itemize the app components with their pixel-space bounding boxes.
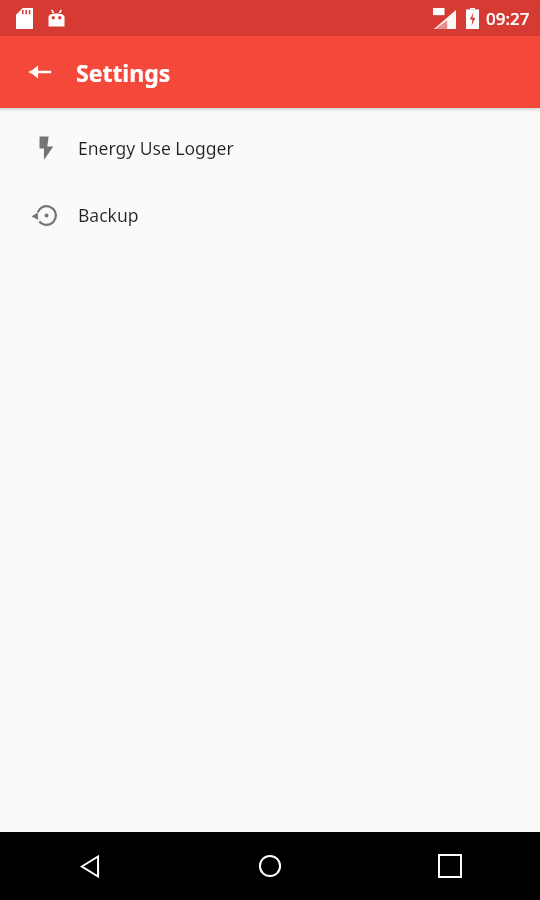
button[interactable]: Home <box>180 832 360 900</box>
staticText: Backup <box>78 203 139 227</box>
button[interactable]: Backup <box>0 181 540 248</box>
button[interactable]: Back <box>12 44 68 100</box>
button[interactable]: Back <box>0 832 180 900</box>
staticText: Energy Use Logger <box>78 136 234 160</box>
staticText: 09:27 <box>486 7 530 30</box>
staticText: Settings <box>76 57 171 88</box>
button[interactable]: Recent apps <box>360 832 540 900</box>
button[interactable]: Energy Use Logger <box>0 114 540 181</box>
